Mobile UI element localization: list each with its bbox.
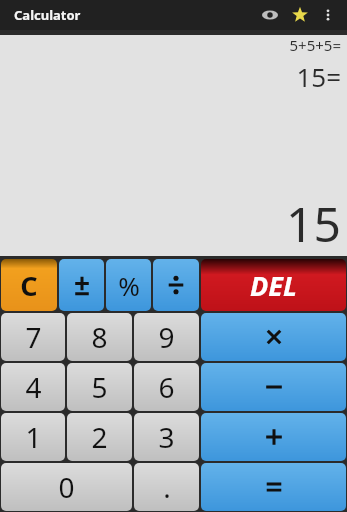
button[interactable]: Add [201, 413, 346, 461]
button[interactable]: . [134, 463, 199, 511]
button[interactable]: 9 [134, 313, 199, 361]
button[interactable]: 2 [67, 413, 132, 461]
staticText: 9 [158, 318, 175, 356]
staticText: . [163, 468, 171, 506]
staticText: 3 [158, 418, 175, 456]
button[interactable]: C [1, 259, 57, 311]
button[interactable]: Divide [153, 259, 199, 311]
staticText: 2 [91, 418, 108, 456]
button[interactable]: 0 [1, 463, 132, 511]
button[interactable]: Preview [255, 0, 285, 30]
button[interactable]: Multiply [201, 313, 346, 361]
button[interactable]: More options [315, 2, 341, 28]
staticText: 0 [58, 468, 75, 506]
button[interactable]: 8 [67, 313, 132, 361]
staticText: DEL [250, 267, 297, 304]
button[interactable]: 5 [67, 363, 132, 411]
button[interactable]: Favorite [285, 0, 315, 30]
button[interactable]: 4 [1, 363, 65, 411]
staticText: Calculator [14, 6, 81, 24]
staticText: 6 [158, 368, 175, 406]
staticText: 15 [6, 191, 341, 256]
button[interactable]: 3 [134, 413, 199, 461]
button[interactable]: 1 [1, 413, 65, 461]
button[interactable]: Equals [201, 463, 346, 511]
button[interactable]: DEL [201, 259, 346, 311]
button[interactable]: Subtract [201, 363, 346, 411]
button[interactable]: Plus minus [59, 259, 104, 311]
staticText: 4 [25, 368, 42, 406]
staticText: 7 [25, 318, 42, 356]
staticText: 5 [91, 368, 108, 406]
button[interactable]: 7 [1, 313, 65, 361]
staticText: C [20, 267, 38, 304]
staticText: 5+5+5= [6, 35, 341, 55]
staticText: 8 [91, 318, 108, 356]
button[interactable]: 6 [134, 363, 199, 411]
button[interactable]: % [106, 259, 151, 311]
staticText: % [118, 268, 140, 303]
staticText: 1 [25, 418, 42, 456]
staticText: 15= [6, 59, 341, 94]
